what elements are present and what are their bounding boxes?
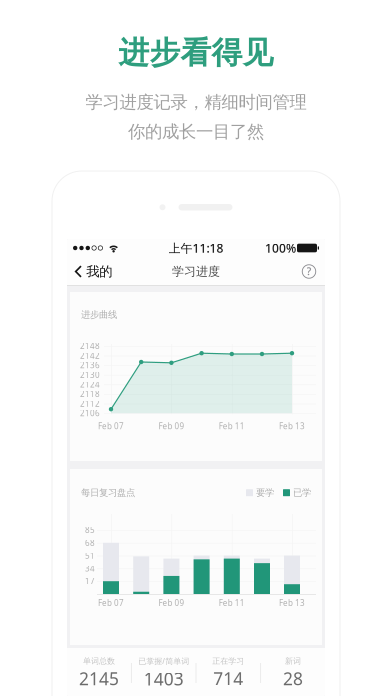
staticText: 28	[283, 667, 303, 690]
staticText: 2136	[80, 360, 100, 370]
staticText: 学习进度记录，精细时间管理	[85, 92, 306, 113]
staticText: 每日复习盘点	[81, 487, 135, 498]
staticText: 2106	[80, 408, 100, 418]
staticText: 2124	[80, 379, 100, 390]
staticText: Feb 11	[219, 421, 245, 431]
staticText: Feb 07	[98, 598, 124, 608]
staticText: 2130	[80, 369, 100, 380]
staticText: ?	[306, 264, 311, 278]
staticText: 进步看得见	[118, 34, 273, 72]
staticText: 要学	[256, 487, 274, 498]
staticText: 2118	[80, 389, 100, 399]
staticText: 我的	[86, 263, 112, 280]
button[interactable]: Help	[295, 257, 323, 286]
staticText: Feb 09	[158, 421, 184, 431]
staticText: 新词	[285, 656, 301, 666]
staticText: 85	[85, 525, 95, 535]
staticText: Feb 07	[98, 421, 124, 431]
staticText: 68	[85, 537, 95, 548]
staticText: 正在学习	[212, 656, 244, 666]
staticText: 已掌握/简单词	[138, 656, 189, 666]
staticText: 51	[85, 550, 95, 561]
staticText: 进步曲线	[81, 309, 117, 320]
staticText: Feb 09	[158, 598, 184, 608]
staticText: 100%	[265, 240, 296, 256]
staticText: 17	[85, 576, 95, 586]
staticText: 已学	[293, 487, 311, 498]
staticText: Feb 13	[279, 421, 305, 431]
staticText: Feb 11	[219, 598, 245, 608]
staticText: 2112	[80, 398, 100, 409]
staticText: 2142	[80, 350, 100, 361]
staticText: 34	[85, 563, 95, 574]
staticText: 714	[213, 667, 243, 690]
staticText: 上午11:18	[168, 240, 223, 256]
staticText: 学习进度	[172, 264, 220, 279]
staticText: 2148	[80, 341, 100, 351]
staticText: 单词总数	[83, 656, 115, 666]
staticText: Feb 13	[279, 598, 305, 608]
staticText: 你的成长一目了然	[128, 121, 264, 142]
button[interactable]: 我的	[67, 257, 118, 286]
staticText: 1403	[144, 667, 184, 690]
staticText: 2145	[79, 667, 119, 690]
